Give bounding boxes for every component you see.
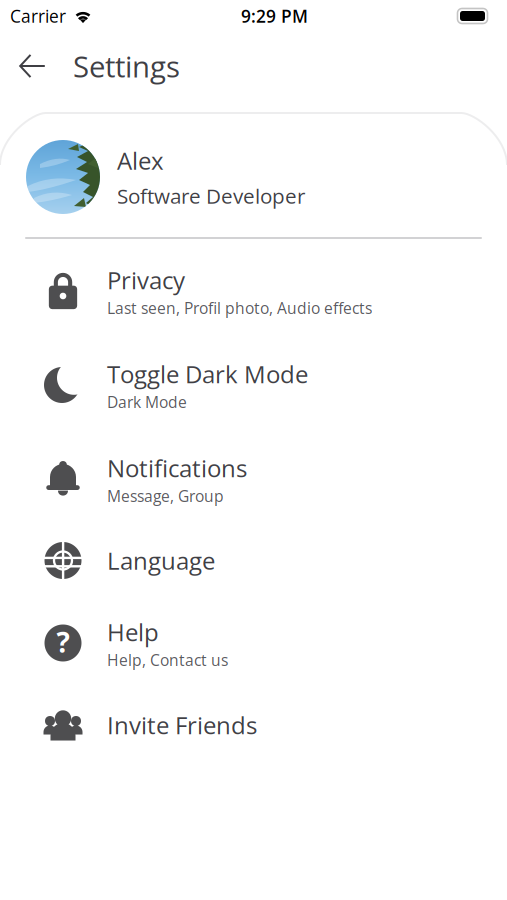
button[interactable]: Invite Friends [0,682,507,764]
button[interactable]: Toggle Dark Mode [0,343,507,427]
staticText: Settings [73,46,180,86]
staticText: Language [107,544,215,577]
button[interactable]: Alex [0,113,507,237]
staticText: Notifications [107,451,247,484]
button[interactable]: Privacy [0,239,507,343]
staticText: 9:29 PM [241,4,308,28]
button[interactable]: Language [0,518,507,595]
staticText: Help [107,615,159,648]
staticText: Privacy [107,263,185,296]
button[interactable]: Back [11,43,54,88]
button[interactable]: Notifications [0,427,507,518]
staticText: Carrier [10,4,66,28]
staticText: Message, Group [107,485,224,506]
staticText: Toggle Dark Mode [107,357,308,390]
staticText: Invite Friends [107,709,257,741]
staticText: ? [56,623,69,661]
staticText: Last seen, Profil photo, Audio effects [107,297,372,318]
staticText: Help, Contact us [107,649,228,670]
button[interactable]: ? [0,595,507,682]
staticText: Alex [117,144,164,177]
staticText: Software Developer [117,182,305,210]
staticText: Dark Mode [107,391,187,412]
